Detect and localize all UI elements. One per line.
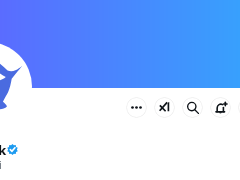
- staticText: k: [0, 141, 7, 159]
- button[interactable]: Message: [238, 97, 240, 118]
- button[interactable]: More options: [126, 97, 147, 118]
- staticText: i: [0, 157, 2, 172]
- button[interactable]: Notifications: [210, 97, 231, 118]
- button[interactable]: Grok: [154, 97, 175, 118]
- button[interactable]: Search: [182, 97, 203, 118]
